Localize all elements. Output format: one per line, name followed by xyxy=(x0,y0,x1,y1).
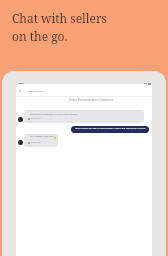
staticText: Yes, please! Thank you xyxy=(30,135,54,138)
staticText: Marlborough xyxy=(28,89,43,92)
staticText: Translate xyxy=(31,141,41,144)
other: Back xyxy=(18,89,22,93)
button[interactable] xyxy=(24,134,58,147)
button[interactable]: Translate xyxy=(28,117,41,120)
button[interactable]: Translate xyxy=(28,141,41,144)
button[interactable] xyxy=(71,126,149,133)
staticText: Sure! Would you like to personalize it w… xyxy=(75,127,146,130)
staticText: Translate xyxy=(31,117,41,120)
staticText: Chat with sellers on the go. xyxy=(12,10,107,44)
button[interactable]: Back xyxy=(16,86,152,95)
button[interactable] xyxy=(24,110,144,123)
staticText: Would it be possible to see these initia… xyxy=(30,112,78,115)
staticText: Order Personalization Questions xyxy=(69,98,114,102)
